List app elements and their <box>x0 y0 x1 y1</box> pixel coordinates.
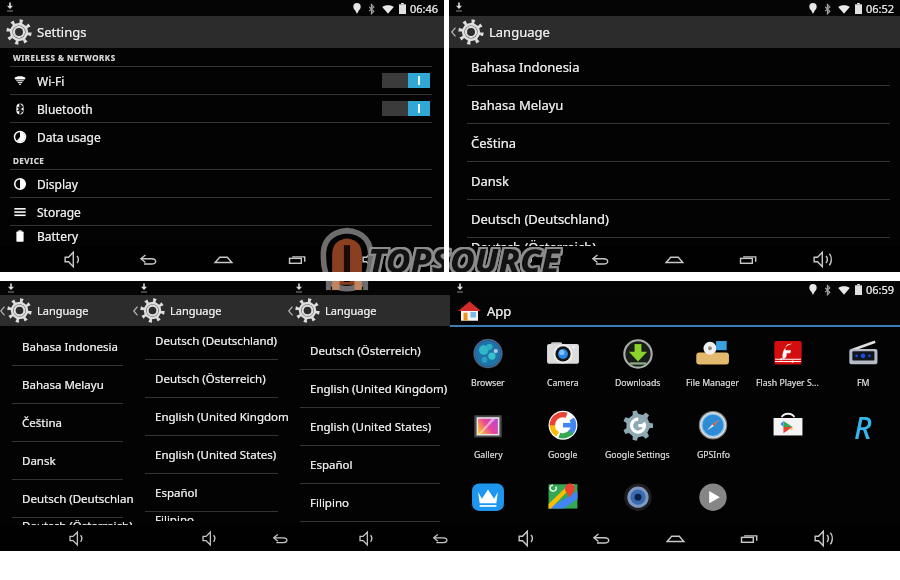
button[interactable]: Home <box>186 246 260 272</box>
button[interactable]: Back <box>564 525 638 551</box>
button[interactable]: VolumeDown <box>353 525 382 551</box>
button[interactable]: Back <box>111 246 186 272</box>
button[interactable]: Language <box>0 295 133 326</box>
staticText: Language <box>325 303 377 318</box>
button[interactable]: VolumeDown <box>196 525 225 551</box>
button[interactable]: VolumeUp <box>334 246 408 272</box>
button[interactable]: VolumeDown <box>63 525 92 551</box>
button[interactable]: Español <box>133 474 288 512</box>
button[interactable]: R <box>825 410 900 482</box>
button[interactable]: Camera <box>525 338 600 410</box>
staticText: 06:59 <box>866 282 895 297</box>
staticText: Language <box>37 303 89 318</box>
staticText: TOPSOURCE <box>370 235 562 281</box>
button[interactable]: App <box>450 297 900 325</box>
button[interactable]: Bahasa Melayu <box>0 366 133 404</box>
button[interactable]: Deutsch (Deutschland) <box>449 200 900 238</box>
staticText: Bahasa Melayu <box>471 96 564 114</box>
button[interactable]: Data usage <box>0 123 444 151</box>
button[interactable]: Google Settings <box>600 410 675 482</box>
staticText: Deutsch (Österreich) <box>22 518 133 525</box>
staticText: Deutsch (Österreich) <box>310 343 421 359</box>
button[interactable] <box>750 410 825 482</box>
button[interactable] <box>525 482 600 525</box>
button[interactable] <box>450 482 525 525</box>
staticText: TOPSOURCE <box>366 238 558 284</box>
staticText: Gallery <box>474 449 503 461</box>
button[interactable]: VolumeUp <box>786 525 860 551</box>
staticText: GPSInfo <box>697 449 730 461</box>
button[interactable]: Filipino <box>133 512 288 521</box>
button[interactable]: Settings <box>0 16 444 48</box>
button[interactable]: Recents <box>260 246 334 272</box>
button[interactable] <box>600 482 675 525</box>
button[interactable]: VolumeUp <box>785 246 859 272</box>
button[interactable]: English (United Kingdom) <box>288 370 450 408</box>
staticText: TOPSOURCE <box>368 237 560 283</box>
button[interactable]: Display <box>0 170 444 198</box>
button[interactable]: VolumeDown <box>490 246 563 272</box>
staticText: TOPSOURCE <box>366 235 558 281</box>
button[interactable]: Dansk <box>0 442 133 480</box>
button[interactable]: Español <box>288 446 450 484</box>
button[interactable]: Home <box>637 246 711 272</box>
button[interactable]: File Manager <box>675 338 750 410</box>
button[interactable]: Bahasa Indonesia <box>0 328 133 366</box>
button[interactable]: Flash Player S... <box>750 338 825 410</box>
staticText: TOPSOURCE <box>369 238 561 284</box>
button[interactable] <box>675 482 750 525</box>
button[interactable]: Bluetooth <box>0 95 444 123</box>
button[interactable]: Gallery <box>450 410 525 482</box>
button[interactable]: Language <box>133 295 288 326</box>
button[interactable]: Downloads <box>600 338 675 410</box>
button[interactable]: Bahasa Indonesia <box>449 48 900 86</box>
button[interactable]: Dansk <box>449 162 900 200</box>
button[interactable]: Recents <box>712 525 786 551</box>
button[interactable]: Deutsch (Österreich) <box>288 332 450 370</box>
button[interactable]: Language <box>449 16 900 48</box>
button[interactable]: Bahasa Melayu <box>449 86 900 124</box>
button[interactable]: Čeština <box>0 404 133 442</box>
staticText: Deutsch (Deutschland) <box>22 491 133 507</box>
button[interactable]: VolumeDown <box>36 246 111 272</box>
button[interactable]: Language <box>288 295 450 326</box>
staticText: Downloads <box>615 377 661 389</box>
button[interactable]: FM <box>825 338 900 410</box>
button[interactable] <box>382 101 430 116</box>
button[interactable]: Deutsch (Deutschland) <box>0 480 133 518</box>
button[interactable]: English (United States) <box>288 408 450 446</box>
button[interactable]: GPSInfo <box>675 410 750 482</box>
button[interactable]: Recents <box>711 246 785 272</box>
button[interactable]: Deutsch (Deutschland) <box>133 326 288 360</box>
button[interactable]: Deutsch (Österreich) <box>133 360 288 398</box>
staticText: Bahasa Indonesia <box>471 58 580 76</box>
button[interactable]: Back <box>266 525 295 551</box>
button[interactable]: Filipino <box>288 484 450 522</box>
button[interactable]: Home <box>638 525 712 551</box>
button[interactable]: Google <box>525 410 600 482</box>
button[interactable]: Battery <box>0 226 444 246</box>
button[interactable]: Back <box>426 525 455 551</box>
staticText: English (United Kingdom) <box>155 409 288 425</box>
button[interactable]: VolumeDown <box>490 525 564 551</box>
staticText: Bahasa Indonesia <box>22 339 118 355</box>
staticText: Settings <box>37 23 87 41</box>
staticText: Filipino <box>310 495 349 511</box>
staticText: English (United Kingdom) <box>310 381 448 397</box>
button[interactable]: English (United Kingdom) <box>133 398 288 436</box>
button[interactable] <box>382 73 430 88</box>
button[interactable]: Deutsch (Österreich) <box>449 238 900 246</box>
button[interactable]: Wi-Fi <box>0 67 444 95</box>
button[interactable]: Čeština <box>449 124 900 162</box>
staticText: English (United States) <box>310 419 432 435</box>
staticText: TOPSOURCE <box>366 239 558 285</box>
button[interactable]: Back <box>563 246 637 272</box>
button[interactable]: English (United States) <box>133 436 288 474</box>
staticText: Data usage <box>37 129 101 145</box>
button[interactable]: Deutsch (Österreich) <box>0 518 133 525</box>
button[interactable]: Storage <box>0 198 444 226</box>
button[interactable]: Browser <box>450 338 525 410</box>
